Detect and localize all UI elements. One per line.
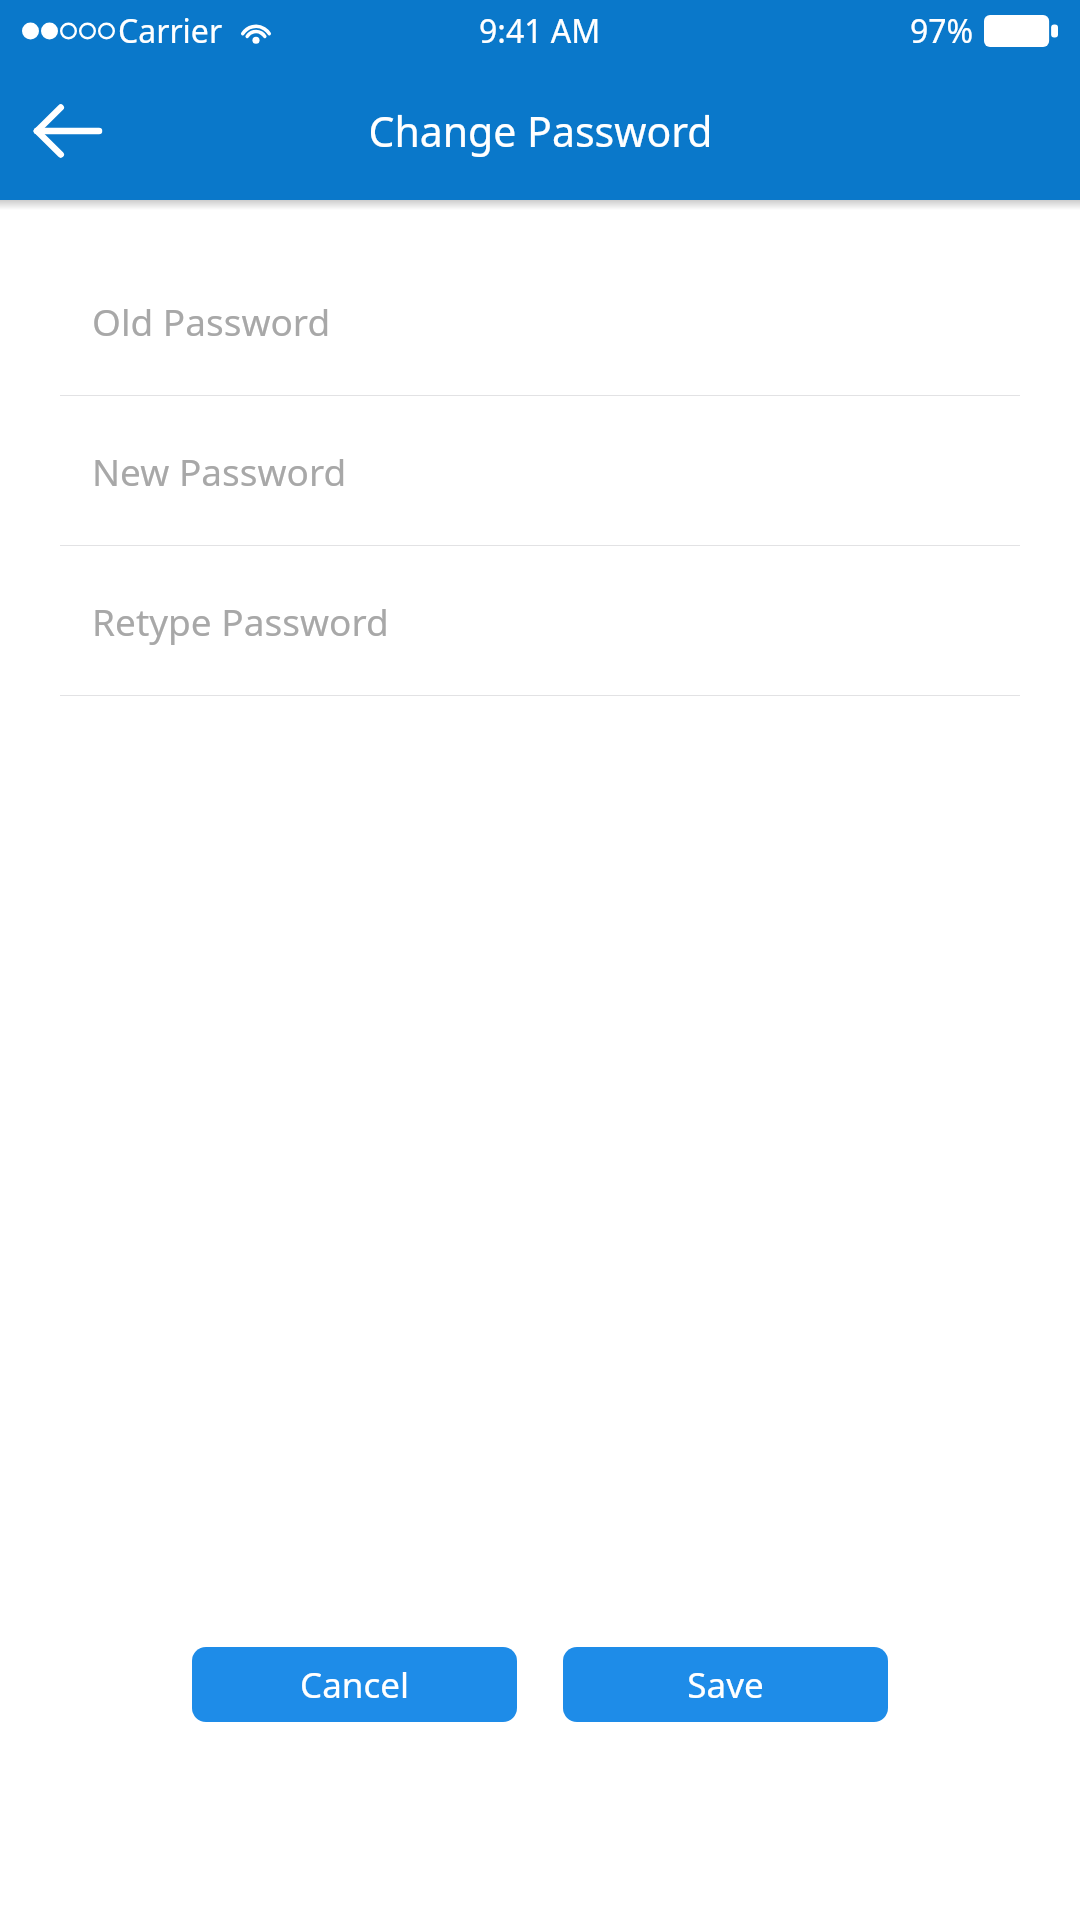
staticText: Change Password bbox=[368, 103, 713, 159]
staticText: Retype Password bbox=[92, 596, 389, 646]
button[interactable]: Back bbox=[14, 77, 122, 185]
staticText: New Password bbox=[92, 446, 347, 496]
staticText: Cancel bbox=[300, 1661, 409, 1709]
staticText: Old Password bbox=[92, 296, 331, 346]
button[interactable]: Cancel bbox=[192, 1647, 517, 1722]
staticText: Carrier bbox=[118, 9, 223, 53]
staticText: 97% bbox=[910, 9, 974, 53]
button[interactable]: Retype Password bbox=[0, 546, 1080, 696]
button[interactable]: New Password bbox=[0, 396, 1080, 546]
button[interactable]: Save bbox=[563, 1647, 888, 1722]
staticText: 9:41 AM bbox=[479, 9, 601, 53]
button[interactable]: Old Password bbox=[0, 246, 1080, 396]
staticText: Save bbox=[687, 1661, 764, 1709]
